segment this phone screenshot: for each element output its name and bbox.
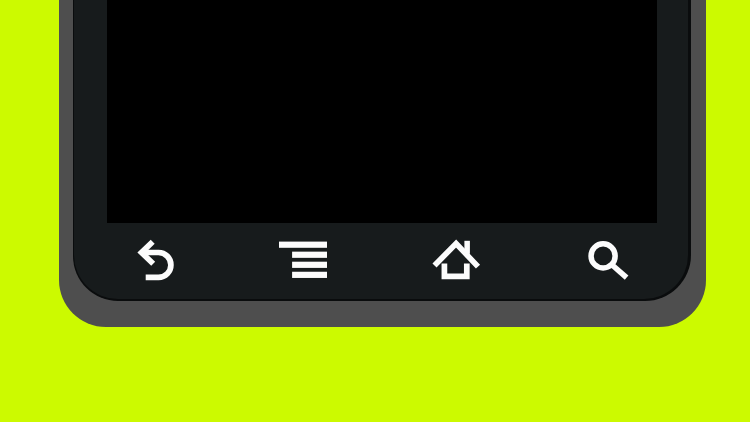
button[interactable]: Back <box>123 224 195 298</box>
button[interactable]: Menu <box>265 227 341 293</box>
button[interactable]: Search <box>570 226 642 294</box>
button[interactable]: Home <box>418 224 494 294</box>
